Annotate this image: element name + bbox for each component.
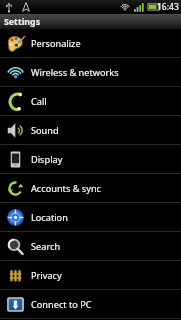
staticText: Display (31, 153, 63, 166)
staticText: Wireless & networks (31, 66, 119, 79)
staticText: Call (31, 95, 47, 108)
staticText: 16:43 (157, 1, 179, 13)
button[interactable]: Search (0, 232, 181, 261)
button[interactable]: Wireless & networks (0, 58, 181, 87)
button[interactable]: Display (0, 145, 181, 174)
staticText: Connect to PC (31, 298, 92, 311)
staticText: Search (31, 240, 61, 253)
staticText: Location (31, 211, 68, 224)
button[interactable]: Call (0, 87, 181, 116)
button[interactable]: Location (0, 203, 181, 232)
button[interactable]: Connect to PC (0, 290, 181, 319)
staticText: Sound (31, 124, 59, 137)
staticText: Accounts & sync (31, 182, 101, 195)
staticText: Personalize (31, 37, 81, 50)
button[interactable]: Accounts & sync (0, 174, 181, 203)
staticText: Settings (4, 16, 41, 28)
button[interactable]: Personalize (0, 29, 181, 58)
button[interactable]: Sound (0, 116, 181, 145)
button[interactable]: Privacy (0, 261, 181, 290)
staticText: Privacy (31, 269, 62, 282)
